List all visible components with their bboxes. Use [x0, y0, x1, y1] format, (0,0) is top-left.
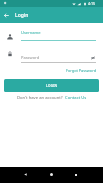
button[interactable]: Back: [0, 9, 13, 22]
staticText: LOGIN: [46, 84, 58, 88]
button[interactable]: Show password: [88, 53, 97, 62]
button[interactable]: LOGIN: [4, 79, 99, 92]
button[interactable]: Username: [21, 30, 96, 41]
button[interactable]: Password: [21, 55, 87, 66]
staticText: Don't have an account?: [17, 95, 63, 101]
staticText: Password: [21, 55, 40, 60]
button[interactable]: Home: [44, 167, 59, 182]
staticText: Username: [21, 30, 41, 35]
staticText: 4:15: [88, 1, 96, 6]
staticText: Forgot Password: [66, 68, 96, 73]
button[interactable]: Back: [18, 167, 33, 182]
staticText: Contact Us: [65, 95, 87, 101]
button[interactable]: Contact Us: [65, 95, 87, 101]
button[interactable]: Forgot Password: [59, 67, 103, 74]
button[interactable]: Recent apps: [68, 167, 83, 182]
staticText: Login: [15, 12, 29, 19]
